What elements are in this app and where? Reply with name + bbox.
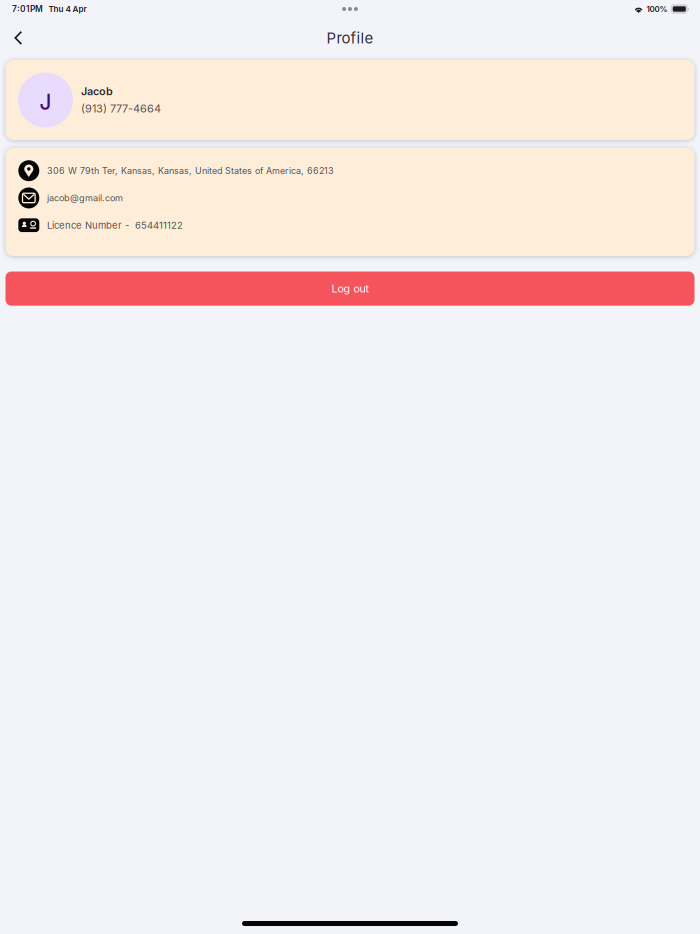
staticText: Jacob (81, 85, 113, 98)
staticText: Profile (326, 29, 373, 47)
staticText: 306 W 79th Ter, Kansas, Kansas, United S… (47, 165, 334, 176)
staticText: Licence Number - 654411122 (47, 219, 183, 231)
staticText: Thu 4 Apr (48, 4, 86, 14)
staticText: 100% (647, 4, 668, 14)
button[interactable]: Log out (5, 271, 694, 306)
staticText: jacob@gmail.com (47, 192, 123, 203)
staticText: Log out (331, 282, 368, 295)
staticText: J (39, 90, 51, 115)
staticText: (913) 777-4664 (81, 102, 161, 115)
staticText: 7:01PM (12, 4, 43, 14)
button[interactable]: Back (0, 25, 35, 51)
